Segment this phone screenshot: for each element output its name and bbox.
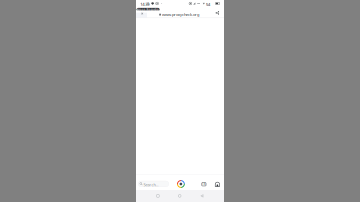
button[interactable]: Recents [152, 190, 163, 201]
staticText: 54 [206, 2, 210, 7]
button[interactable]: Back [196, 190, 207, 201]
staticText: 14:33 [140, 1, 149, 7]
staticText: www.proxycheck.org [162, 12, 199, 17]
button[interactable]: Home [174, 190, 185, 201]
button[interactable]: Home [215, 182, 220, 187]
button[interactable]: Tabs [202, 182, 206, 187]
button[interactable]: Close tab [139, 10, 145, 16]
button[interactable]: Search... [138, 181, 169, 187]
button[interactable]: Share [214, 10, 220, 16]
staticText: 18 [202, 182, 206, 186]
button[interactable]: Google Lens [177, 180, 185, 188]
staticText: Search... [144, 182, 159, 187]
staticText: Screen Recorder [137, 8, 160, 11]
